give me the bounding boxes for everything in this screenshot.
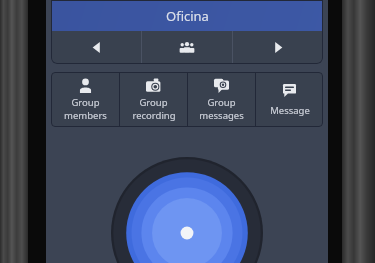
button[interactable]: Group — [51, 72, 119, 127]
button[interactable]: Group — [120, 72, 187, 127]
staticText: Group — [71, 96, 100, 109]
button[interactable]: Group — [188, 72, 255, 127]
button[interactable]: Next channel — [233, 31, 323, 64]
staticText: Oficina — [166, 7, 209, 25]
button[interactable]: Oficina — [51, 0, 323, 31]
button[interactable]: Message — [256, 72, 323, 127]
staticText: Group — [139, 96, 168, 109]
staticText: recording — [132, 109, 176, 122]
staticText: Message — [270, 104, 310, 117]
button[interactable]: Group list — [142, 31, 232, 64]
button[interactable]: Push to talk — [111, 157, 263, 263]
staticText: members — [64, 109, 107, 122]
button[interactable]: Previous channel — [51, 31, 141, 64]
staticText: messages — [199, 109, 244, 122]
staticText: Group — [207, 96, 236, 109]
